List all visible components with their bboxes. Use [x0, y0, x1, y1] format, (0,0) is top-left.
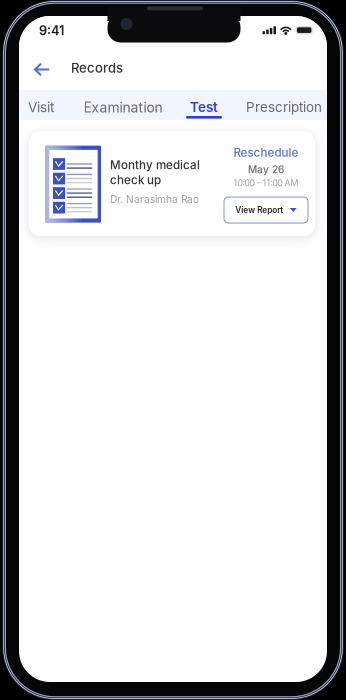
staticText: Test	[190, 99, 218, 115]
button[interactable]: Back	[25, 54, 57, 84]
button[interactable]: Reschedule	[220, 145, 312, 160]
staticText: Examination	[83, 99, 162, 116]
staticText: Records	[71, 60, 123, 76]
button[interactable]: Test	[182, 90, 226, 120]
button[interactable]: Examination	[77, 90, 169, 120]
staticText: View Report	[235, 205, 283, 215]
staticText: May 26	[248, 163, 284, 176]
staticText: 10:00 - 11:00 AM	[233, 178, 298, 188]
staticText: Visit	[28, 99, 54, 115]
button[interactable]: View Report	[224, 197, 308, 223]
staticText: Monthy medical	[110, 158, 200, 172]
button[interactable]: Prescription	[241, 90, 327, 120]
staticText: Dr. Narasimha Rao	[110, 193, 199, 205]
staticText: Reschedule	[233, 145, 298, 159]
staticText: 9:41	[39, 23, 64, 38]
staticText: check up	[110, 173, 161, 187]
button[interactable]: Visit	[20, 90, 62, 120]
staticText: Prescription	[246, 99, 322, 115]
